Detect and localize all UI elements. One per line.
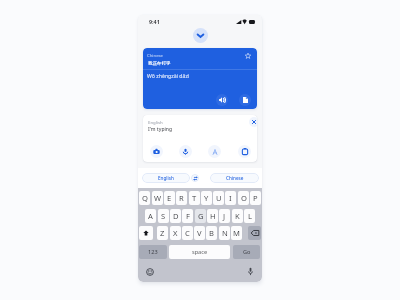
button[interactable]: Chinese (210, 173, 259, 183)
staticText: U (216, 193, 222, 203)
button[interactable]: A (145, 209, 156, 223)
button[interactable]: 123 (139, 245, 167, 259)
button[interactable]: V (194, 226, 205, 240)
button[interactable]: Q (139, 191, 150, 205)
button[interactable]: English (142, 173, 190, 183)
staticText: 9:41 (149, 18, 160, 25)
staticText: R (179, 193, 184, 203)
button[interactable]: Save translation (244, 52, 251, 59)
button[interactable]: B (206, 226, 217, 240)
button[interactable]: X (170, 226, 181, 240)
staticText: A (148, 211, 153, 221)
staticText: Z (160, 228, 165, 238)
button[interactable]: H (207, 209, 218, 223)
button[interactable]: G (195, 209, 206, 223)
button[interactable]: U (213, 191, 224, 205)
staticText: G (198, 211, 204, 221)
staticText: S (161, 211, 166, 221)
button[interactable]: Handwriting (208, 145, 221, 158)
button[interactable]: I (225, 191, 236, 205)
staticText: space (192, 248, 208, 256)
staticText: English (148, 119, 163, 125)
button[interactable]: W (152, 191, 163, 205)
button[interactable]: D (170, 209, 181, 223)
button[interactable]: Z (157, 226, 168, 240)
button[interactable]: Collapse (193, 28, 208, 43)
staticText: N (222, 228, 228, 238)
staticText: 123 (148, 248, 158, 256)
button[interactable]: Chinese (143, 48, 257, 109)
staticText: Q (142, 193, 148, 203)
staticText: J (223, 211, 226, 221)
staticText: Chinese (226, 175, 244, 181)
button[interactable]: O (238, 191, 249, 205)
button[interactable]: M (231, 226, 242, 240)
staticText: Chinese (147, 52, 164, 58)
staticText: F (186, 211, 190, 221)
staticText: Y (204, 193, 209, 203)
staticText: I (229, 193, 232, 203)
staticText: E (167, 193, 172, 203)
staticText: M (233, 228, 240, 238)
staticText: Wǒ zhèngzài dǎzì (147, 72, 190, 79)
button[interactable]: Go (233, 245, 260, 259)
staticText: C (185, 228, 190, 238)
staticText: H (210, 211, 216, 221)
button[interactable]: J (219, 209, 230, 223)
staticText: V (197, 228, 202, 238)
staticText: L (248, 211, 252, 221)
staticText: O (241, 193, 247, 203)
button[interactable]: Close (249, 117, 257, 127)
button[interactable]: Clipboard (238, 145, 251, 158)
staticText: P (253, 193, 258, 203)
button[interactable]: Copy (239, 94, 251, 106)
button[interactable]: Camera (150, 145, 163, 158)
button[interactable]: Swap languages (191, 174, 199, 182)
button[interactable]: Voice input (179, 145, 192, 158)
button[interactable]: Backspace (248, 226, 261, 240)
staticText: 我正在打字 (148, 60, 171, 67)
button[interactable]: Shift (139, 226, 153, 240)
button[interactable]: P (250, 191, 261, 205)
button[interactable]: T (189, 191, 200, 205)
button[interactable]: N (219, 226, 230, 240)
button[interactable]: E (164, 191, 175, 205)
staticText: W (154, 193, 162, 203)
button[interactable]: Listen (216, 94, 228, 106)
staticText: K (235, 211, 240, 221)
staticText: T (192, 193, 197, 203)
staticText: B (209, 228, 214, 238)
button[interactable]: space (169, 245, 230, 259)
button[interactable]: Emoji keyboard (144, 266, 155, 277)
button[interactable]: K (232, 209, 243, 223)
button[interactable]: F (182, 209, 193, 223)
button[interactable]: R (176, 191, 187, 205)
staticText: X (173, 228, 178, 238)
staticText: English (158, 175, 174, 181)
button[interactable]: S (158, 209, 169, 223)
staticText: I'm typing (148, 126, 173, 133)
button[interactable]: C (182, 226, 193, 240)
staticText: Go (243, 248, 251, 256)
button[interactable]: Y (201, 191, 212, 205)
button[interactable]: Dictation (245, 266, 256, 277)
staticText: D (173, 211, 179, 221)
button[interactable]: L (244, 209, 255, 223)
